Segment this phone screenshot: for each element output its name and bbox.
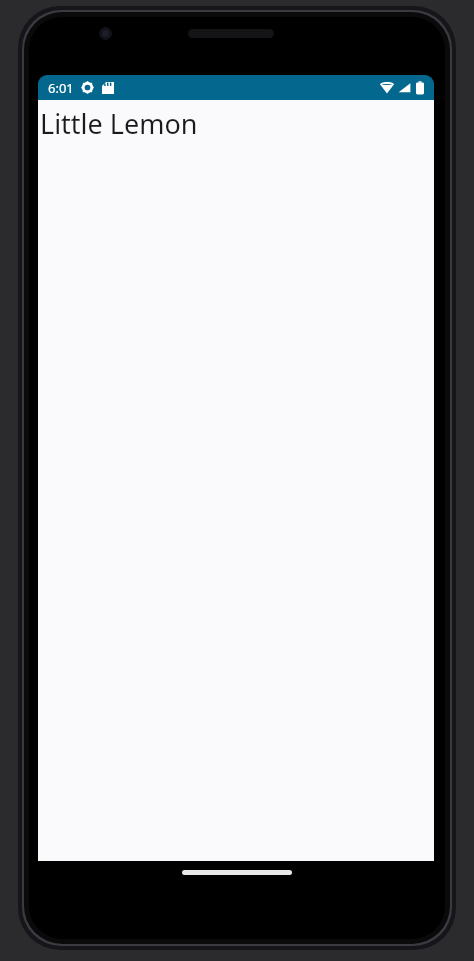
button[interactable]: Little Lemon [38, 100, 198, 142]
staticText: 6:01 [48, 79, 74, 97]
other: Home gesture bar [182, 870, 292, 875]
